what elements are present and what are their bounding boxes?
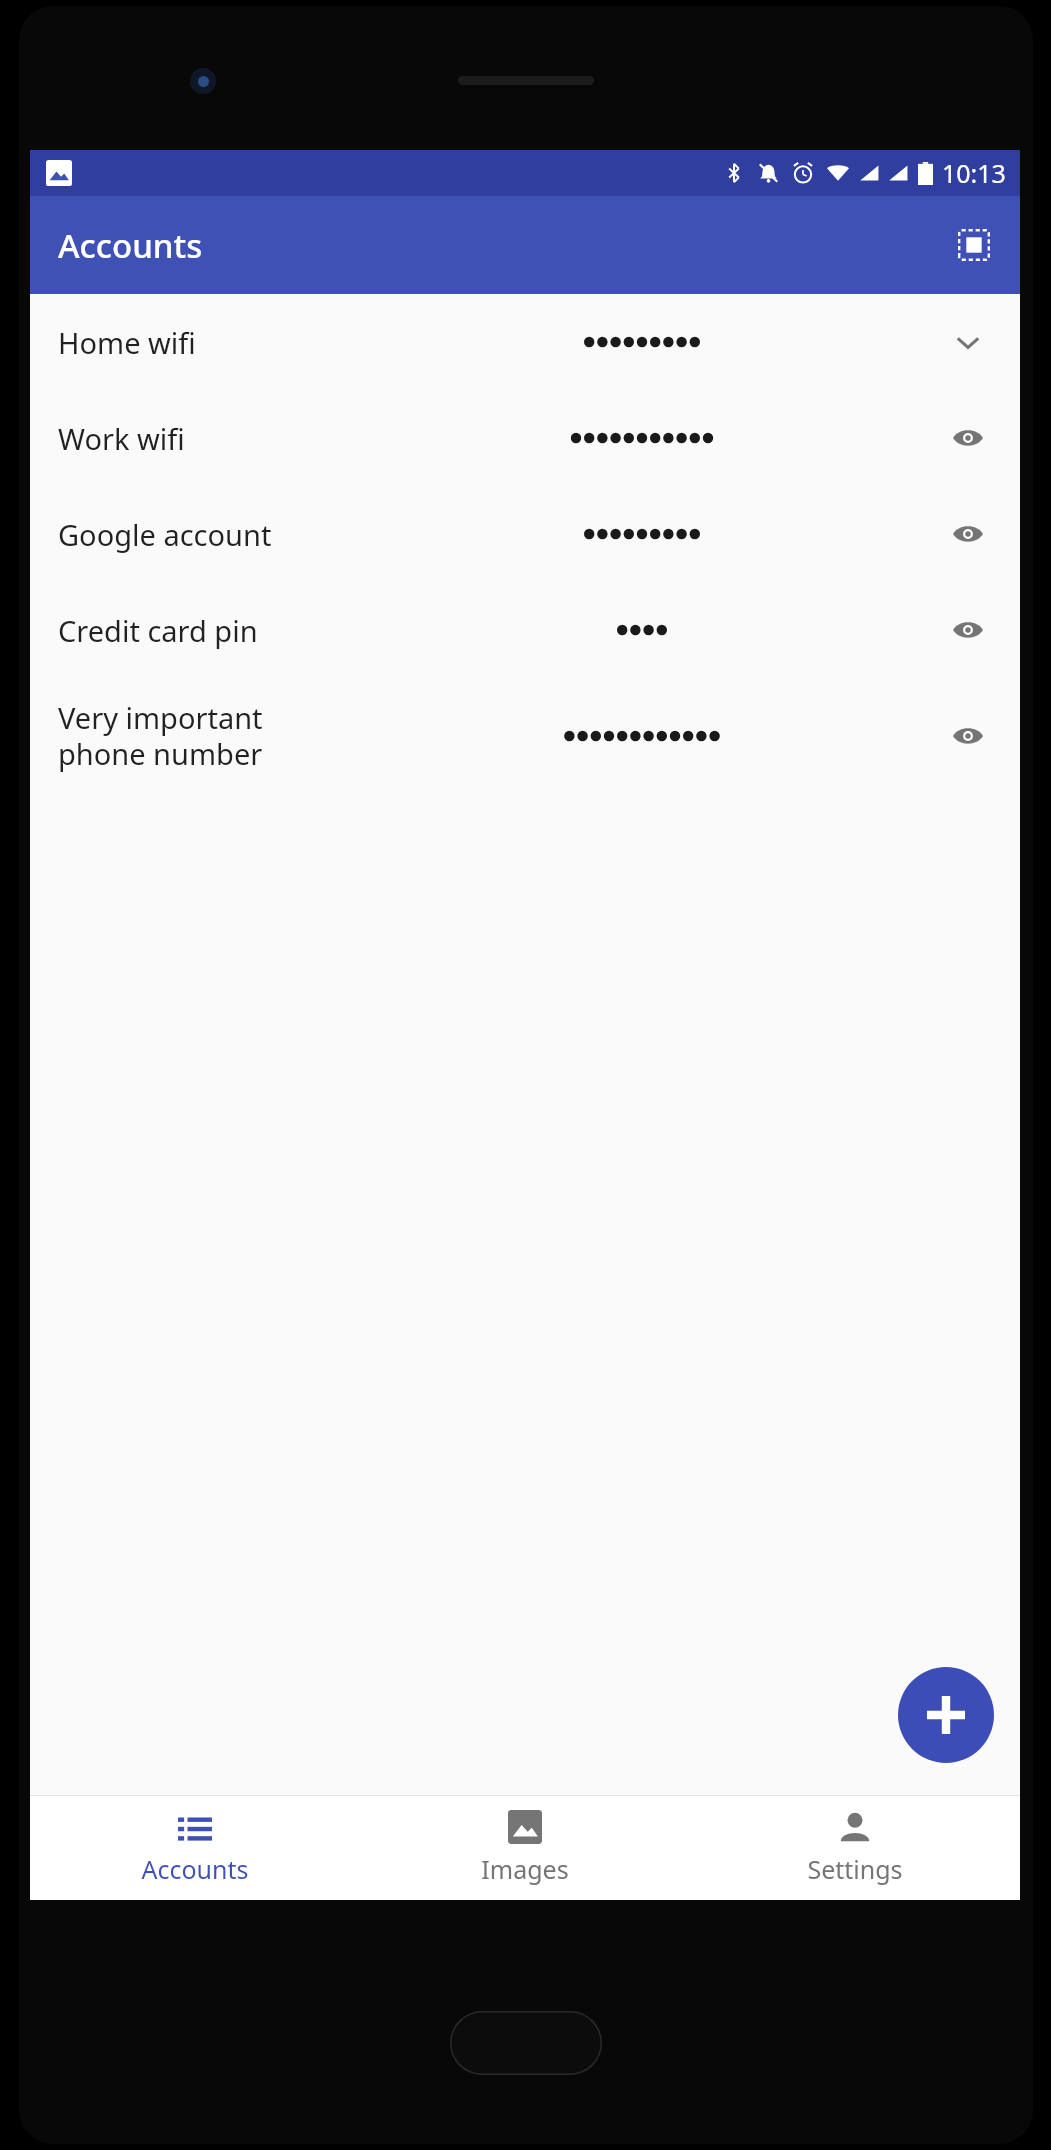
button[interactable]: Work wifi (30, 390, 1020, 486)
button[interactable]: Google account (30, 486, 1020, 582)
staticText: Google account (58, 515, 348, 554)
button[interactable]: Show password (936, 406, 1000, 470)
button[interactable]: Show password (936, 598, 1000, 662)
button[interactable]: Collapse (936, 310, 1000, 374)
staticText: Home wifi (58, 323, 348, 362)
staticText: Credit card pin (58, 611, 348, 650)
button[interactable]: Accounts (30, 1796, 360, 1900)
button[interactable]: Settings (690, 1796, 1020, 1900)
staticText: 10:13 (942, 156, 1006, 190)
button[interactable]: Credit card pin (30, 582, 1020, 678)
staticText: Accounts (58, 223, 203, 268)
button[interactable]: Select all (946, 217, 1002, 273)
staticText: Settings (807, 1852, 903, 1886)
button[interactable]: Show password (936, 704, 1000, 768)
staticText: Work wifi (58, 419, 348, 458)
button[interactable]: Very important phone number (30, 678, 1020, 793)
button[interactable]: Home wifi (30, 294, 1020, 390)
staticText: Images (481, 1852, 569, 1886)
button[interactable]: Show password (936, 502, 1000, 566)
staticText: Accounts (141, 1852, 249, 1886)
button[interactable]: Images (360, 1796, 690, 1900)
button[interactable]: Add account (898, 1667, 994, 1763)
staticText: Very important phone number (58, 698, 348, 774)
